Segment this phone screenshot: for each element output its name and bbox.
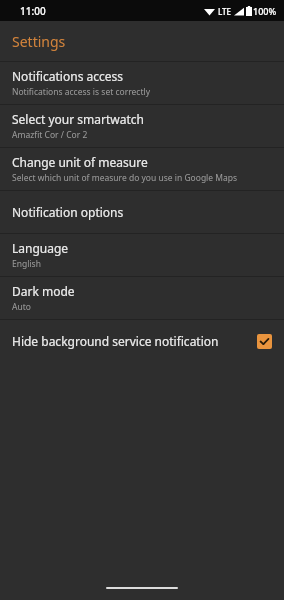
staticText: 100% [253, 5, 277, 17]
button[interactable]: Notification options [0, 191, 284, 233]
staticText: Select which unit of measure do you use … [12, 172, 238, 184]
staticText: Auto [12, 301, 31, 313]
staticText: Language [12, 240, 69, 256]
staticText: Hide background service notification [12, 333, 257, 349]
button[interactable]: Hide background service notification [0, 320, 284, 362]
staticText: Change unit of measure [12, 154, 148, 170]
button[interactable]: Dark mode [0, 277, 284, 319]
staticText: Settings [12, 32, 66, 51]
other: Hide background service notification [257, 334, 272, 349]
button[interactable]: Notifications access [0, 62, 284, 104]
staticText: Notifications access [12, 68, 124, 84]
staticText: Select your smartwatch [12, 111, 144, 127]
staticText: LTE [218, 6, 232, 17]
staticText: Notification options [12, 204, 124, 220]
staticText: Notifications access is set correctly [12, 86, 151, 98]
staticText: Amazfit Cor / Cor 2 [12, 129, 88, 141]
staticText: 11:00 [20, 4, 46, 18]
button[interactable]: Change unit of measure [0, 148, 284, 190]
button[interactable]: Language [0, 234, 284, 276]
button[interactable]: Select your smartwatch [0, 105, 284, 147]
staticText: English [12, 258, 41, 270]
staticText: Dark mode [12, 283, 75, 299]
